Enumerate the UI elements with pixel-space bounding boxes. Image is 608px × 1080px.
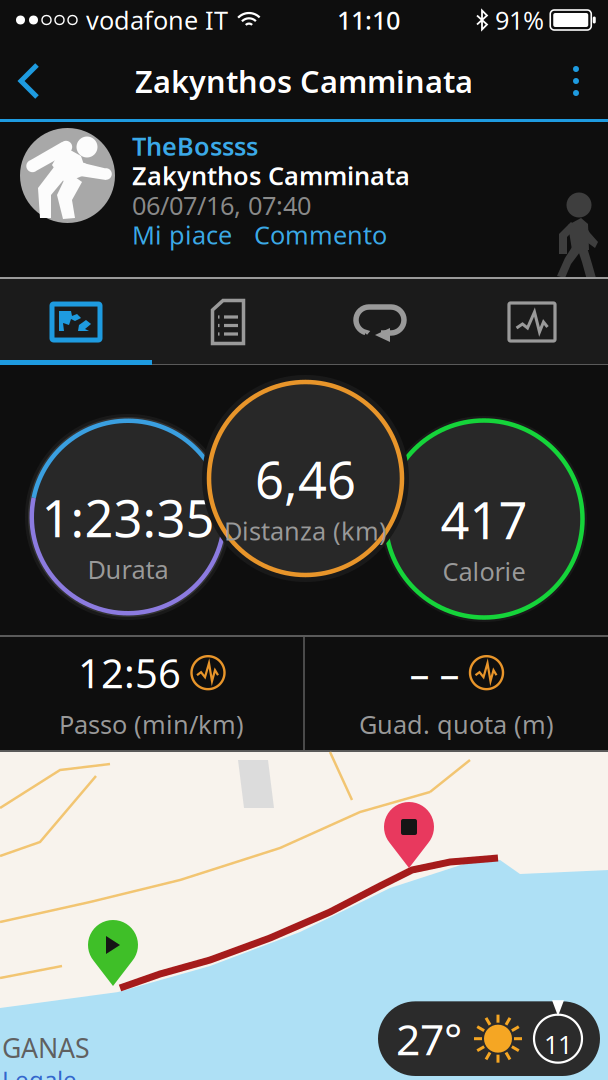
staticText: Durata [87,552,168,586]
staticText: Passo (min/km) [59,707,244,741]
button[interactable]: Map [0,279,152,365]
staticText: 12:56 [78,646,181,699]
staticText: vodafone IT [86,3,228,37]
button[interactable]: Commento [232,218,387,251]
button[interactable]: TheBossss [132,129,432,163]
staticText: 11:10 [337,3,400,37]
staticText: 11 [544,1027,572,1061]
staticText: Zakynthos Camminata [132,159,410,192]
staticText: Calorie [442,554,525,588]
staticText: 417 [440,486,527,553]
staticText: – – [409,646,459,699]
button[interactable]: Details [152,279,304,365]
button[interactable]: More options [540,43,608,119]
button[interactable]: Laps [304,279,456,365]
staticText: Guad. quota (m) [359,707,554,741]
staticText: 27° [396,1010,462,1067]
staticText: 1:23:35 [41,484,214,551]
button[interactable]: Charts [456,279,608,365]
staticText: 91% [495,3,544,37]
staticText: Distanza (km) [224,514,387,547]
staticText: 6,46 [255,445,356,513]
staticText: Zakynthos Camminata [135,61,473,101]
staticText: Legale [2,1063,77,1080]
staticText: Mi piace [132,218,232,251]
staticText: Commento [254,218,387,251]
staticText: GANAS [2,1030,90,1065]
button[interactable]: Mi piace [132,218,232,251]
staticText: TheBossss [132,129,258,163]
staticText: 06/07/16, 07:40 [132,188,311,222]
button[interactable]: Back [0,43,64,119]
